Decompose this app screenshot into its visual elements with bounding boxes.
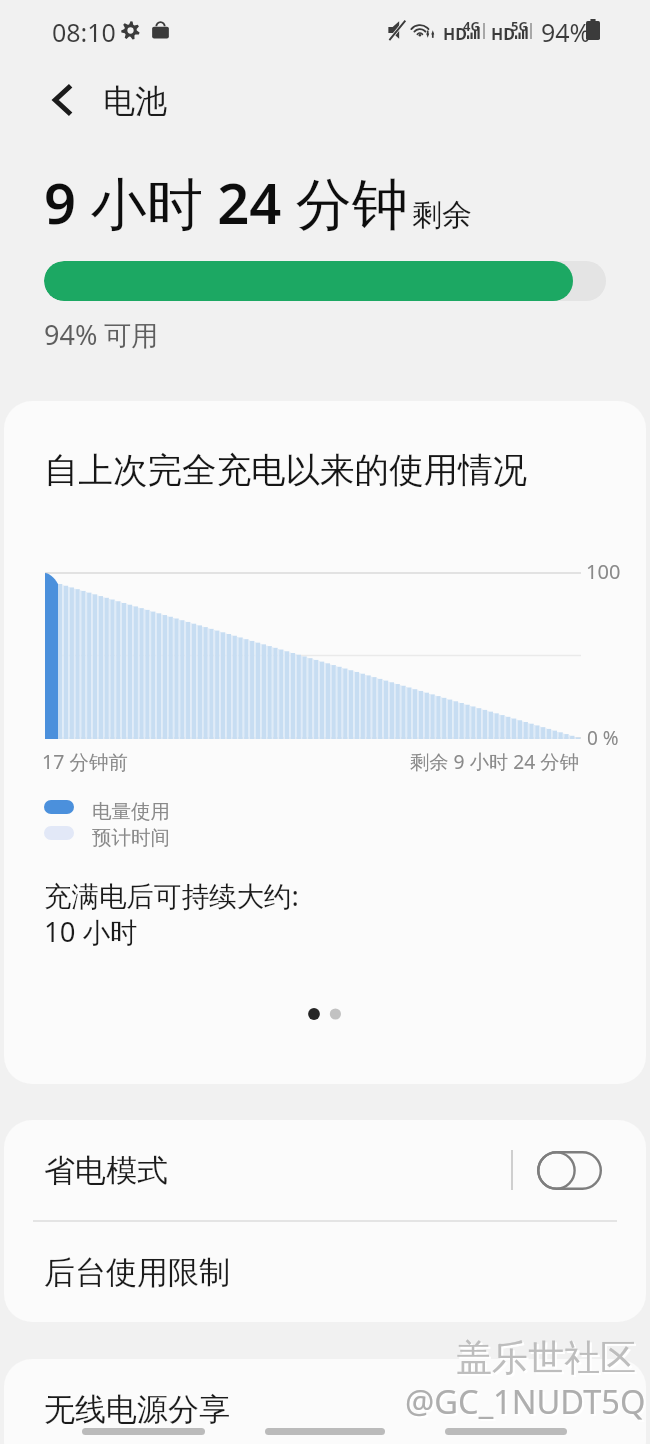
staticText: 94% xyxy=(541,15,591,49)
staticText: @GC_1NUDT5Q xyxy=(407,1381,648,1425)
staticText: 9 小时 24 分钟 xyxy=(44,164,408,240)
staticText: 100 xyxy=(586,558,621,585)
staticText: 后台使用限制 xyxy=(44,1253,230,1292)
staticText: 剩余 xyxy=(412,196,472,234)
staticText: 94% 可用 xyxy=(44,316,159,353)
staticText: 5G xyxy=(511,17,528,35)
staticText: 充满电后可持续大约: xyxy=(44,877,299,915)
staticText: 自上次完全充电以来的使用情况 xyxy=(44,449,527,492)
staticText: HD xyxy=(443,23,467,45)
staticText: @GC_1NUDT5Q xyxy=(405,1379,646,1423)
staticText: 4G xyxy=(463,17,480,35)
staticText: 预计时间 xyxy=(92,825,170,850)
staticText: 剩余 9 小时 24 分钟 xyxy=(410,748,579,774)
staticText: HD xyxy=(491,23,515,45)
staticText: 08:10 xyxy=(52,15,116,49)
staticText: 无线电源分享 xyxy=(44,1390,230,1429)
staticText: 电池 xyxy=(103,81,167,121)
staticText: 电量使用 xyxy=(92,799,170,824)
staticText: 盖乐世社区 xyxy=(458,1337,638,1382)
staticText: 盖乐世社区 xyxy=(456,1335,636,1380)
staticText: 0 % xyxy=(587,725,619,751)
button[interactable]: 返回 xyxy=(34,72,90,128)
button[interactable]: 无线电源分享 xyxy=(4,1359,646,1444)
staticText: 省电模式 xyxy=(44,1151,168,1190)
staticText: 10 小时 xyxy=(44,913,138,951)
button[interactable]: 后台使用限制 xyxy=(4,1222,646,1322)
button[interactable]: 省电模式 xyxy=(4,1120,646,1220)
staticText: 17 分钟前 xyxy=(42,748,128,775)
